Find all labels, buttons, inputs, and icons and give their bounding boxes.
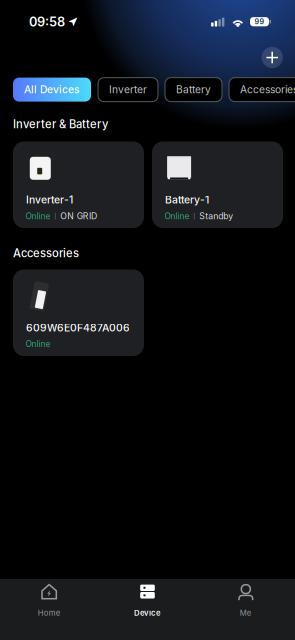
staticText: Online bbox=[165, 211, 190, 221]
staticText: Online bbox=[26, 211, 51, 221]
staticText: Inverter bbox=[109, 83, 147, 96]
staticText: 609W6E0F487A006 bbox=[26, 321, 130, 334]
button[interactable]: Home bbox=[0, 579, 98, 640]
staticText: Accessories bbox=[13, 246, 79, 260]
staticText: Home bbox=[38, 608, 61, 617]
button[interactable]: Add device bbox=[255, 40, 289, 74]
staticText: Inverter & Battery bbox=[13, 117, 108, 131]
staticText: Accessories bbox=[240, 83, 295, 96]
staticText: Battery-1 bbox=[165, 193, 209, 206]
button[interactable]: Me bbox=[197, 579, 295, 640]
staticText: 09:58 bbox=[29, 14, 65, 30]
button[interactable]: Battery-1 bbox=[152, 141, 283, 228]
button[interactable]: Inverter bbox=[98, 78, 158, 102]
staticText: Inverter-1 bbox=[26, 193, 73, 206]
staticText: Online bbox=[26, 339, 51, 349]
staticText: All Devices bbox=[24, 83, 80, 96]
staticText: Standby bbox=[199, 211, 233, 221]
staticText: 99 bbox=[254, 17, 264, 26]
button[interactable]: Device bbox=[98, 579, 197, 640]
button[interactable]: 609W6E0F487A006 bbox=[13, 269, 144, 356]
button[interactable]: All Devices bbox=[13, 78, 91, 102]
staticText: Me bbox=[240, 608, 252, 617]
button[interactable]: Inverter-1 bbox=[13, 141, 144, 228]
staticText: Battery bbox=[176, 83, 211, 96]
button[interactable]: Accessories bbox=[229, 78, 295, 102]
staticText: Device bbox=[134, 608, 161, 617]
button[interactable]: Battery bbox=[165, 78, 222, 102]
staticText: ON GRID bbox=[60, 211, 97, 221]
